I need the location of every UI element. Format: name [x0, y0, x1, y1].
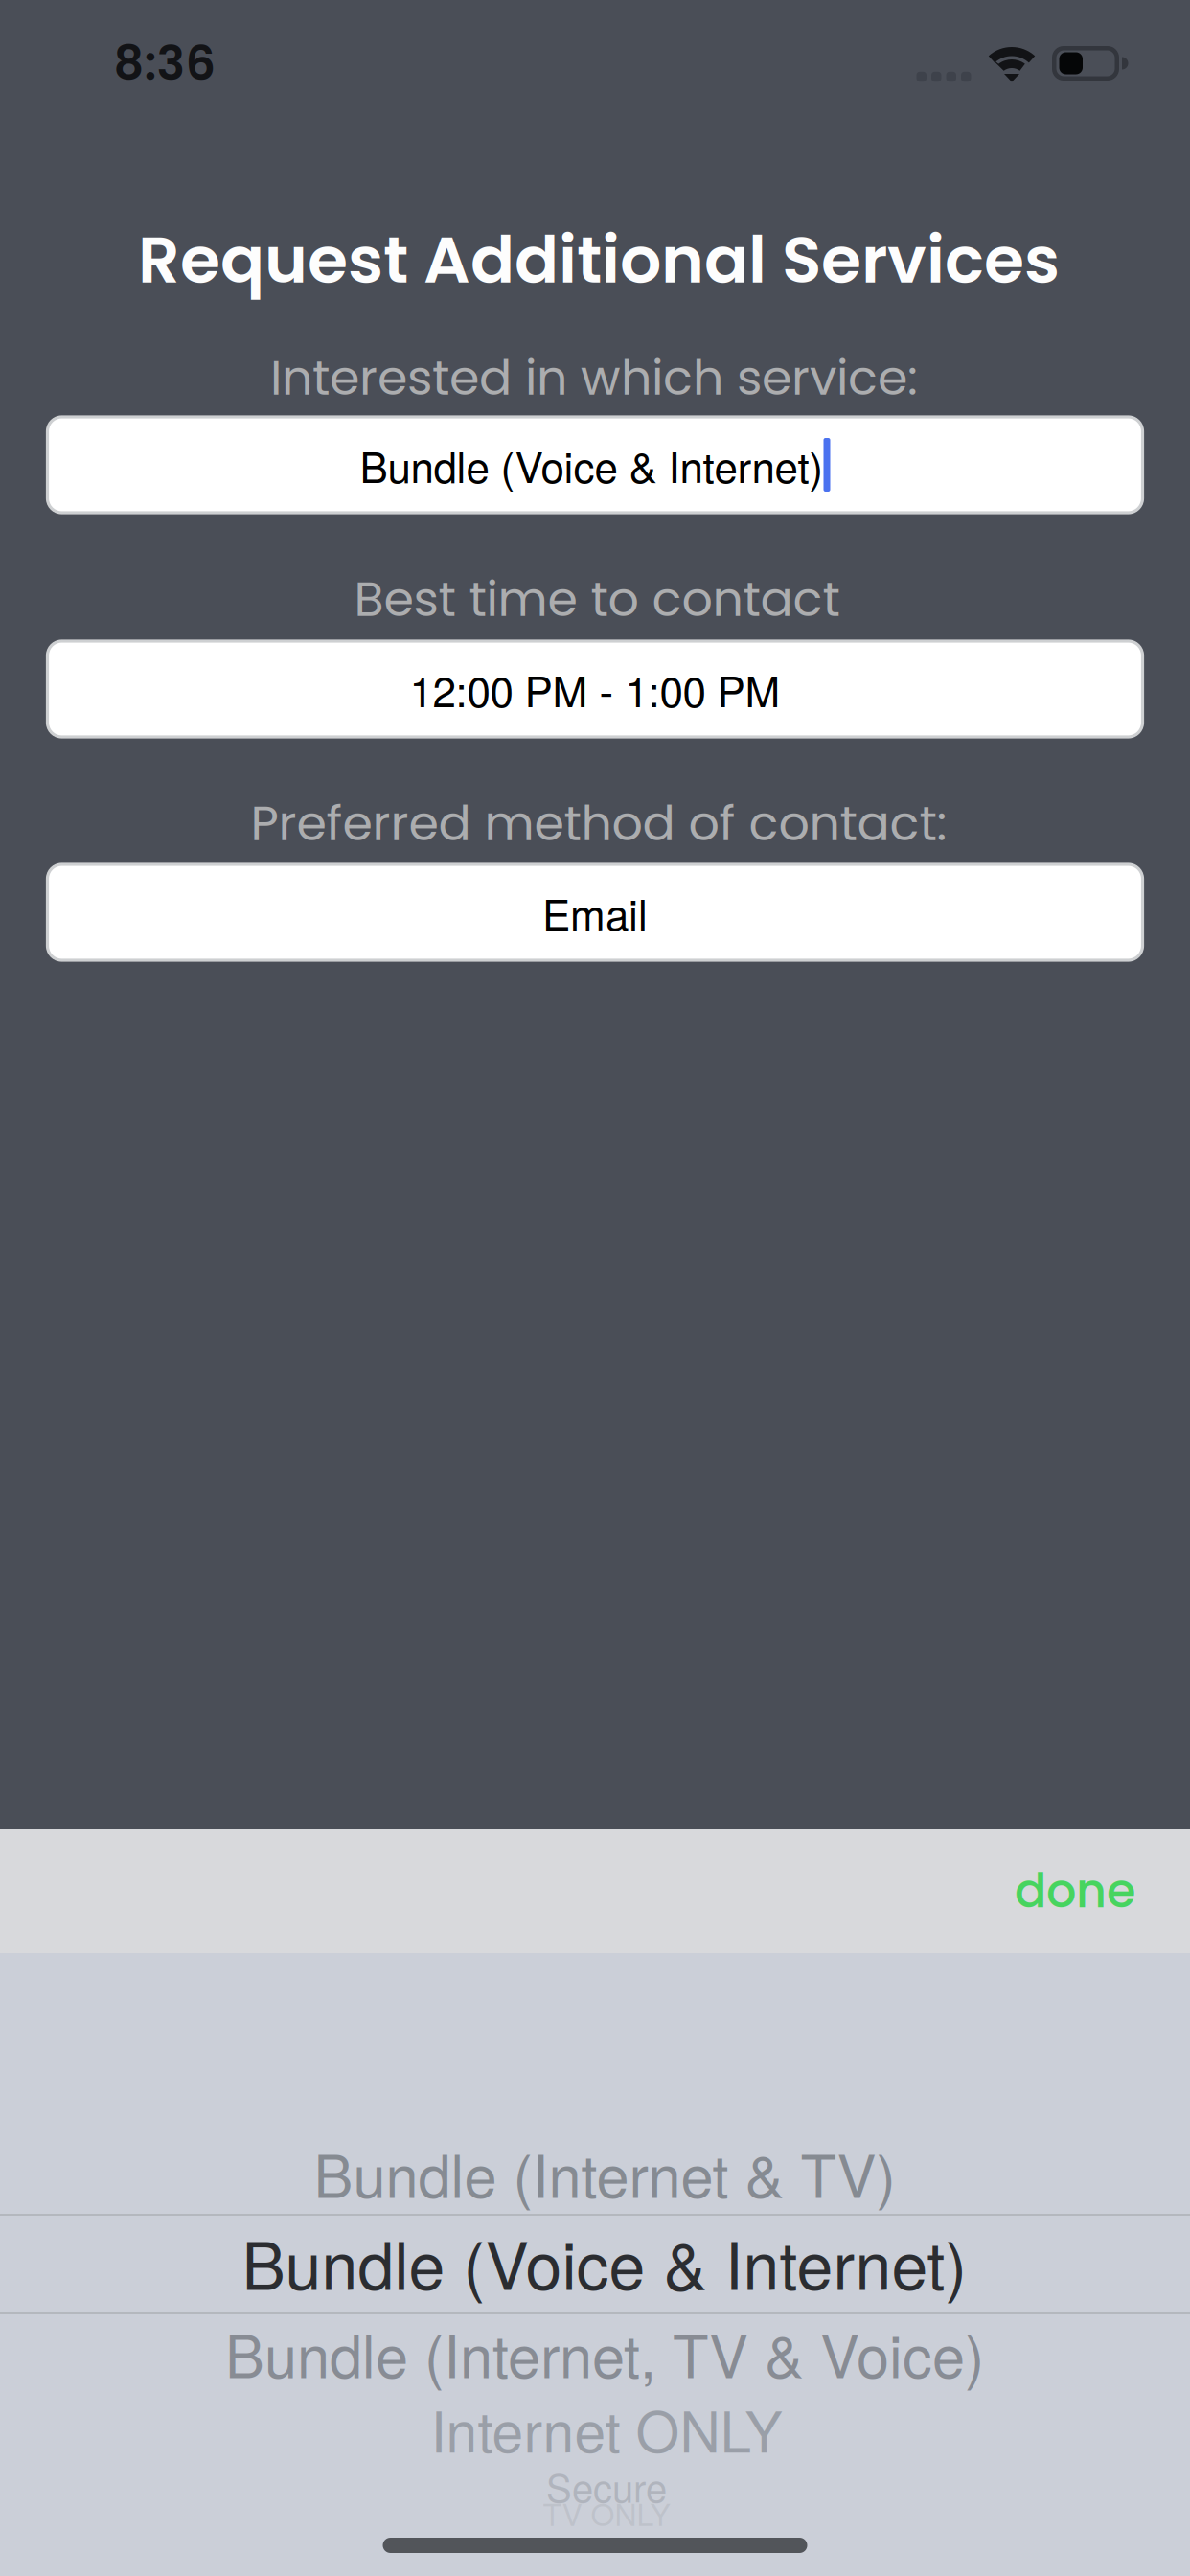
- staticText: Email: [542, 882, 648, 943]
- button[interactable]: Bundle (Voice & Internet): [47, 417, 1143, 513]
- staticText: Internet ONLY: [431, 2388, 782, 2469]
- staticText: Secure: [546, 2459, 667, 2513]
- staticText: Best time to contact: [354, 565, 840, 633]
- button[interactable]: TV ONLY: [543, 2491, 670, 2535]
- button[interactable]: Internet ONLY: [431, 2388, 782, 2469]
- staticText: 8:36: [114, 30, 216, 96]
- staticText: Bundle (Internet, TV & Voice): [225, 2311, 984, 2395]
- staticText: 12:00 PM - 1:00 PM: [410, 659, 780, 719]
- button[interactable]: done: [0, 1828, 1190, 1953]
- staticText: Bundle (Voice & Internet): [360, 435, 824, 495]
- button[interactable]: Bundle (Internet & TV): [314, 2130, 895, 2215]
- staticText: Request Additional Services: [138, 214, 1060, 305]
- button[interactable]: Email: [47, 864, 1143, 960]
- staticText: Bundle (Internet & TV): [314, 2130, 895, 2215]
- button[interactable]: 12:00 PM - 1:00 PM: [47, 641, 1143, 737]
- button[interactable]: Bundle (Internet, TV & Voice): [225, 2311, 984, 2395]
- staticText: Bundle (Voice & Internet): [242, 2215, 967, 2308]
- button[interactable]: Bundle (Voice & Internet): [242, 2215, 967, 2308]
- staticText: Preferred method of contact:: [251, 789, 947, 857]
- staticText: Interested in which service:: [270, 344, 918, 412]
- staticText: TV ONLY: [543, 2491, 670, 2535]
- button[interactable]: Secure: [546, 2459, 667, 2513]
- staticText: done: [1015, 1858, 1135, 1924]
